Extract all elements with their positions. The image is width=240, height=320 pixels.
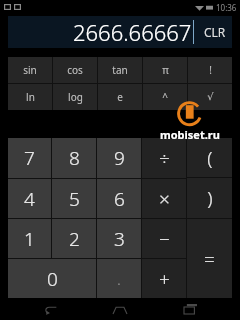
- button[interactable]: ×: [142, 179, 186, 218]
- staticText: mobiset.ru: [160, 127, 220, 142]
- button[interactable]: 7: [8, 138, 51, 178]
- button[interactable]: e: [98, 84, 142, 110]
- button[interactable]: CLR: [198, 16, 232, 48]
- button[interactable]: ln: [8, 84, 52, 110]
- button[interactable]: cos: [53, 57, 97, 83]
- staticText: tan: [112, 63, 128, 77]
- button[interactable]: Home: [100, 298, 140, 320]
- button[interactable]: log: [53, 84, 97, 110]
- staticText: 10:36: [216, 2, 237, 13]
- staticText: 9: [114, 145, 125, 171]
- button[interactable]: 0: [8, 259, 96, 298]
- staticText: cos: [67, 63, 83, 77]
- staticText: CLR: [204, 24, 226, 40]
- button[interactable]: 9: [97, 138, 141, 178]
- button[interactable]: sin: [8, 57, 52, 83]
- staticText: 6: [114, 186, 125, 212]
- staticText: sin: [23, 63, 37, 77]
- button[interactable]: (: [187, 138, 232, 177]
- staticText: ): [207, 185, 213, 211]
- staticText: 8: [69, 145, 80, 171]
- staticText: π: [162, 63, 169, 77]
- button[interactable]: !: [188, 57, 232, 83]
- staticText: ÷: [159, 145, 170, 171]
- staticText: (: [207, 145, 213, 171]
- staticText: −: [159, 226, 170, 252]
- button[interactable]: √: [188, 84, 232, 110]
- staticText: √: [207, 91, 214, 103]
- staticText: 4: [24, 186, 35, 212]
- button[interactable]: 6: [97, 179, 141, 218]
- button[interactable]: ^: [143, 84, 187, 110]
- staticText: 7: [24, 145, 35, 171]
- button[interactable]: 1: [8, 219, 51, 258]
- staticText: 5: [69, 186, 80, 212]
- button[interactable]: Back: [30, 298, 70, 320]
- staticText: =: [204, 246, 215, 272]
- staticText: 3: [114, 226, 125, 252]
- staticText: 1: [24, 226, 35, 252]
- button[interactable]: π: [143, 57, 187, 83]
- staticText: !: [209, 63, 212, 77]
- button[interactable]: ): [187, 178, 232, 218]
- staticText: 0: [47, 266, 58, 292]
- button[interactable]: =: [187, 219, 232, 298]
- staticText: ^: [162, 90, 168, 104]
- staticText: +: [159, 266, 170, 292]
- button[interactable]: ÷: [142, 138, 186, 178]
- staticText: e: [117, 90, 123, 104]
- button[interactable]: tan: [98, 57, 142, 83]
- button[interactable]: 8: [52, 138, 96, 178]
- staticText: 2: [69, 226, 80, 252]
- staticText: ln: [26, 90, 35, 104]
- button[interactable]: Recent apps: [170, 298, 210, 320]
- button[interactable]: 3: [97, 219, 141, 258]
- staticText: ×: [159, 186, 170, 212]
- button[interactable]: 4: [8, 179, 51, 218]
- staticText: .: [117, 268, 121, 290]
- staticText: log: [68, 90, 83, 104]
- button[interactable]: 5: [52, 179, 96, 218]
- button[interactable]: 2: [52, 219, 96, 258]
- staticText: 2666.66667: [73, 17, 192, 47]
- button[interactable]: −: [142, 219, 186, 258]
- button[interactable]: +: [142, 259, 186, 298]
